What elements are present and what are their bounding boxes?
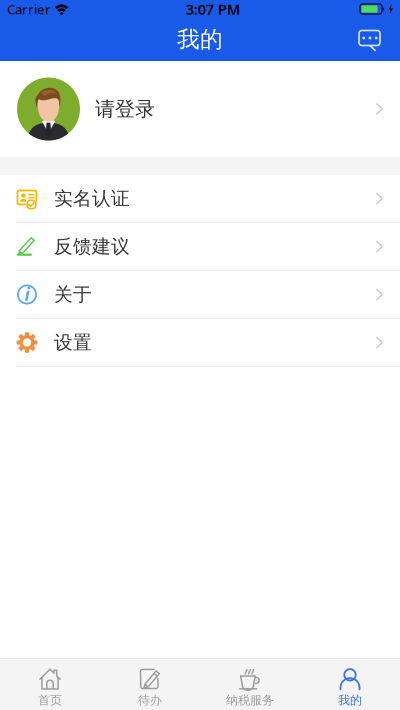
button[interactable]: Messages xyxy=(348,18,392,61)
staticText: 请登录 xyxy=(95,97,155,121)
button[interactable]: 实名认证 xyxy=(0,175,400,222)
staticText: 我的 xyxy=(177,26,223,53)
staticText: 3:07 PM xyxy=(186,0,241,19)
staticText: 纳税服务 xyxy=(226,693,274,708)
staticText: Carrier xyxy=(7,0,51,18)
button[interactable]: 首页 xyxy=(0,659,100,710)
button[interactable]: 设置 xyxy=(0,319,400,366)
button[interactable]: 我的 xyxy=(300,659,400,710)
button[interactable]: i xyxy=(0,271,400,318)
button[interactable]: 纳税服务 xyxy=(200,659,300,710)
staticText: i xyxy=(24,282,29,305)
button[interactable]: 请登录 xyxy=(0,61,400,157)
button[interactable]: 反馈建议 xyxy=(0,223,400,270)
staticText: 我的 xyxy=(338,693,362,708)
staticText: 首页 xyxy=(38,693,62,708)
staticText: 设置 xyxy=(54,331,92,354)
staticText: 关于 xyxy=(54,283,92,306)
staticText: 反馈建议 xyxy=(54,235,130,258)
button[interactable]: 待办 xyxy=(100,659,200,710)
staticText: 实名认证 xyxy=(54,187,130,210)
staticText: 待办 xyxy=(138,693,162,708)
